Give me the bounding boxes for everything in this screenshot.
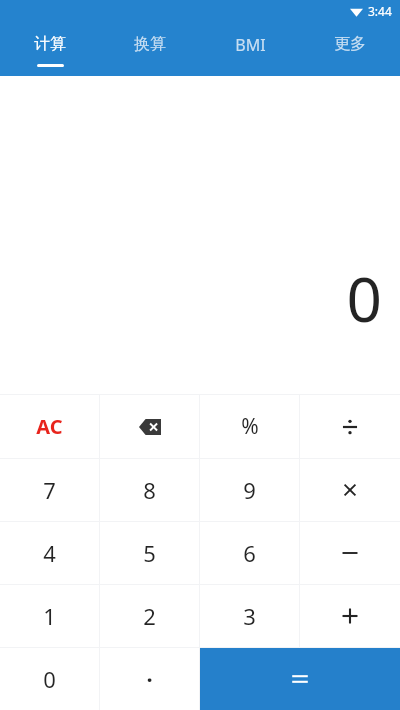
- staticText: %: [241, 412, 259, 441]
- button[interactable]: 计算: [0, 22, 100, 76]
- button[interactable]: 0: [0, 648, 99, 710]
- button[interactable]: ·: [100, 648, 199, 710]
- button[interactable]: 7: [0, 459, 99, 521]
- button[interactable]: 9: [200, 459, 299, 521]
- staticText: 8: [143, 475, 156, 505]
- button[interactable]: AC: [0, 395, 99, 458]
- button[interactable]: Plus: [300, 585, 400, 647]
- staticText: 3:44: [368, 3, 392, 19]
- staticText: 换算: [134, 34, 166, 54]
- staticText: 0: [43, 664, 56, 694]
- button[interactable]: Equals: [200, 648, 400, 710]
- staticText: 9: [243, 475, 256, 505]
- button[interactable]: 2: [100, 585, 199, 647]
- staticText: AC: [36, 413, 63, 440]
- button[interactable]: %: [200, 395, 299, 458]
- button[interactable]: 更多: [300, 22, 400, 76]
- button[interactable]: 3: [200, 585, 299, 647]
- staticText: 3: [243, 601, 256, 631]
- button[interactable]: Minus: [300, 522, 400, 584]
- button[interactable]: 1: [0, 585, 99, 647]
- button[interactable]: Multiply: [300, 459, 400, 521]
- button[interactable]: 5: [100, 522, 199, 584]
- staticText: 4: [43, 538, 56, 568]
- staticText: BMI: [235, 34, 266, 56]
- staticText: 6: [243, 538, 256, 568]
- button[interactable]: BMI: [200, 22, 300, 76]
- staticText: 2: [143, 601, 156, 631]
- button[interactable]: 8: [100, 459, 199, 521]
- staticText: 0: [346, 256, 382, 340]
- staticText: 5: [143, 538, 156, 568]
- button[interactable]: 换算: [100, 22, 200, 76]
- button[interactable]: Backspace: [100, 395, 199, 458]
- staticText: 更多: [334, 34, 366, 54]
- staticText: 计算: [34, 34, 66, 54]
- button[interactable]: 4: [0, 522, 99, 584]
- staticText: ·: [146, 664, 153, 694]
- staticText: 7: [43, 475, 56, 505]
- button[interactable]: Divide: [300, 395, 400, 458]
- button[interactable]: 6: [200, 522, 299, 584]
- staticText: 1: [43, 601, 56, 631]
